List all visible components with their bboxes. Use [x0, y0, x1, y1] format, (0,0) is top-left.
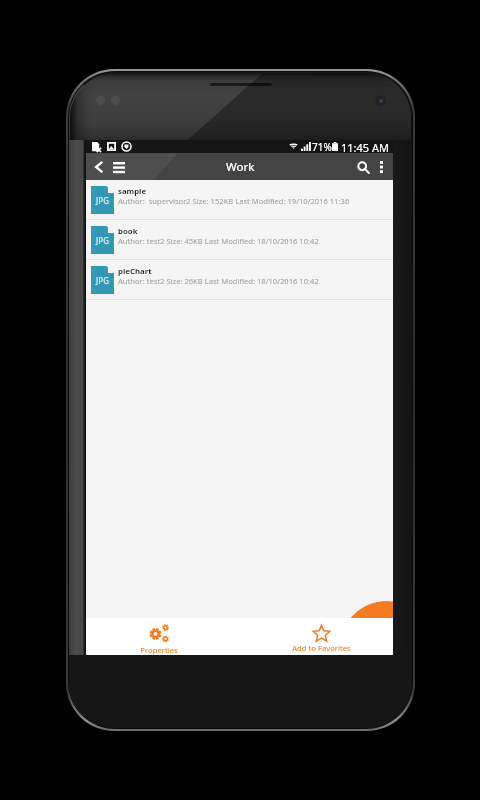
button[interactable]: Add [340, 601, 393, 618]
button[interactable]: Properties [99, 618, 219, 655]
button[interactable]: Menu [109, 157, 129, 177]
staticText: Properties [140, 645, 178, 655]
button[interactable]: Back [89, 157, 109, 177]
staticText: 11:45 AM [341, 140, 389, 153]
staticText: book [118, 226, 138, 237]
button[interactable]: Add to Favorites [261, 618, 381, 655]
staticText: Author: supervisor2 Size: 152KB Last Mod… [118, 196, 350, 206]
staticText: Author: test2 Size: 26KB Last Modified: … [118, 276, 319, 286]
staticText: Author: test2 Size: 45KB Last Modified: … [118, 236, 319, 246]
button[interactable]: JPG [86, 180, 393, 220]
staticText: JPG [96, 275, 110, 286]
staticText: Work [226, 159, 255, 175]
button[interactable]: JPG [86, 220, 393, 260]
staticText: JPG [96, 235, 110, 246]
staticText: Add to Favorites [292, 643, 351, 653]
staticText: sample [118, 186, 147, 197]
staticText: JPG [96, 195, 110, 206]
button[interactable]: More options [373, 159, 389, 175]
staticText: pieChart [118, 266, 152, 277]
button[interactable]: Search [353, 157, 373, 177]
button[interactable]: JPG [86, 260, 393, 300]
staticText: 71% [312, 140, 332, 153]
